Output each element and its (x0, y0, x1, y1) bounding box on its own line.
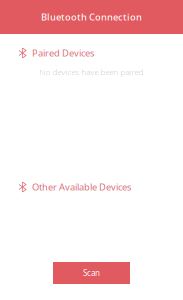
button[interactable]: Scan (53, 262, 130, 284)
staticText: No devices have been paired (39, 67, 143, 77)
staticText: Paired Devices (32, 47, 94, 59)
staticText: Bluetooth Connection (41, 11, 142, 23)
staticText: Scan (83, 268, 100, 278)
staticText: Other Available Devices (32, 181, 131, 193)
